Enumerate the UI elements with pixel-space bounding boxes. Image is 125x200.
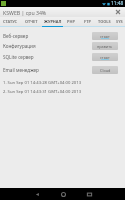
button[interactable]: старт: [92, 32, 118, 40]
button[interactable]: СТАТУС: [0, 17, 21, 26]
staticText: СТАТУС: [3, 19, 18, 24]
staticText: KSWEB | cpu 34%: [3, 9, 47, 16]
staticText: старт: [100, 55, 110, 60]
staticText: ОТЧЕТ: [25, 19, 38, 24]
staticText: Email менеджер: [3, 67, 39, 73]
staticText: Cloud: [100, 68, 111, 73]
button[interactable]: SYS: [113, 17, 125, 26]
button[interactable]: PHP: [63, 17, 79, 26]
staticText: 11:48: [111, 0, 124, 7]
button[interactable]: править: [92, 42, 118, 50]
staticText: Конфигурация: [3, 43, 36, 49]
staticText: FTP: [84, 19, 91, 24]
button[interactable]: Recent apps: [83, 188, 95, 200]
staticText: править: [97, 44, 113, 49]
staticText: 2. Sun Sep 01 14:43:31 GMT+04:00 2013: [3, 89, 82, 95]
staticText: ЖУРНАЛ: [44, 19, 62, 24]
button[interactable]: ОТЧЕТ: [21, 17, 42, 26]
button[interactable]: ЖУРНАЛ: [42, 17, 63, 26]
staticText: SQLite сервер: [3, 54, 34, 60]
button[interactable]: старт: [92, 53, 118, 61]
button[interactable]: Home: [57, 188, 69, 200]
button[interactable]: Exit: [111, 7, 125, 17]
staticText: SYS: [116, 19, 123, 24]
staticText: 1. Sun Sep 01 14:43:28 GMT+04:00 2013: [3, 80, 82, 86]
staticText: PHP: [67, 19, 75, 24]
button[interactable]: Back: [31, 188, 43, 200]
staticText: TOOLS: [98, 19, 111, 24]
staticText: старт: [100, 34, 110, 39]
staticText: Веб-сервер: [3, 33, 29, 39]
button[interactable]: TOOLS: [95, 17, 113, 26]
button[interactable]: FTP: [79, 17, 95, 26]
button[interactable]: Cloud: [92, 66, 118, 74]
